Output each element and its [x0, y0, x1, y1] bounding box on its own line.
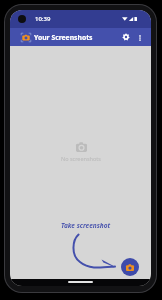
staticText: No screenshots — [61, 155, 101, 162]
button[interactable]: Take screenshot — [121, 258, 139, 276]
button[interactable]: More options — [135, 33, 144, 42]
staticText: Your Screenshots — [34, 33, 93, 42]
staticText: Take screenshot — [61, 221, 111, 230]
button[interactable]: Settings — [120, 31, 132, 43]
staticText: 10:39 — [35, 15, 51, 23]
